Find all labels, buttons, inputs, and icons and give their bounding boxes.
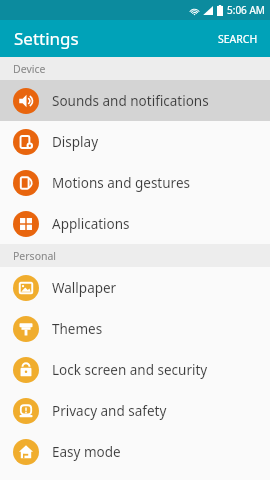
staticText: Themes [52, 320, 103, 338]
button[interactable]: Sounds and notifications [0, 80, 270, 121]
staticText: Lock screen and security [52, 361, 208, 379]
staticText: Motions and gestures [52, 174, 190, 192]
staticText: Sounds and notifications [52, 92, 209, 110]
staticText: Display [52, 133, 99, 151]
button[interactable]: SEARCH [206, 24, 270, 54]
button[interactable]: Privacy and safety [0, 390, 270, 431]
button[interactable]: Motions and gestures [0, 162, 270, 203]
staticText: Personal [13, 249, 57, 263]
button[interactable]: Easy mode [0, 431, 270, 472]
staticText: 5:06 AM [227, 3, 265, 17]
staticText: Privacy and safety [52, 402, 167, 420]
staticText: Settings [14, 27, 79, 50]
staticText: Applications [52, 215, 130, 233]
button[interactable]: Themes [0, 308, 270, 349]
staticText: SEARCH [218, 32, 258, 46]
button[interactable]: Display [0, 121, 270, 162]
staticText: Device [13, 62, 46, 76]
button[interactable]: Applications [0, 203, 270, 244]
button[interactable]: Lock screen and security [0, 349, 270, 390]
button[interactable]: Wallpaper [0, 267, 270, 308]
staticText: Easy mode [52, 443, 121, 461]
staticText: Wallpaper [52, 279, 117, 297]
